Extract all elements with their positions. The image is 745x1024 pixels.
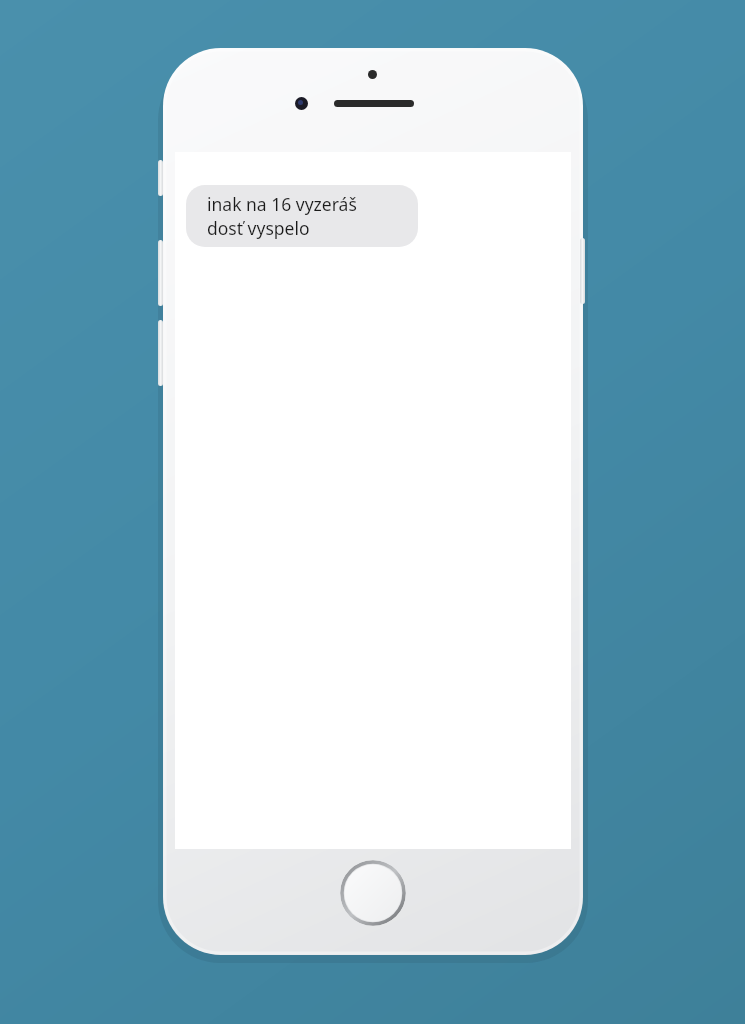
staticText: inak na 16 vyzeráš dosť vyspelo: [207, 192, 357, 240]
button[interactable]: Home: [340, 860, 406, 926]
button[interactable]: inak na 16 vyzeráš dosť vyspelo: [186, 185, 418, 247]
